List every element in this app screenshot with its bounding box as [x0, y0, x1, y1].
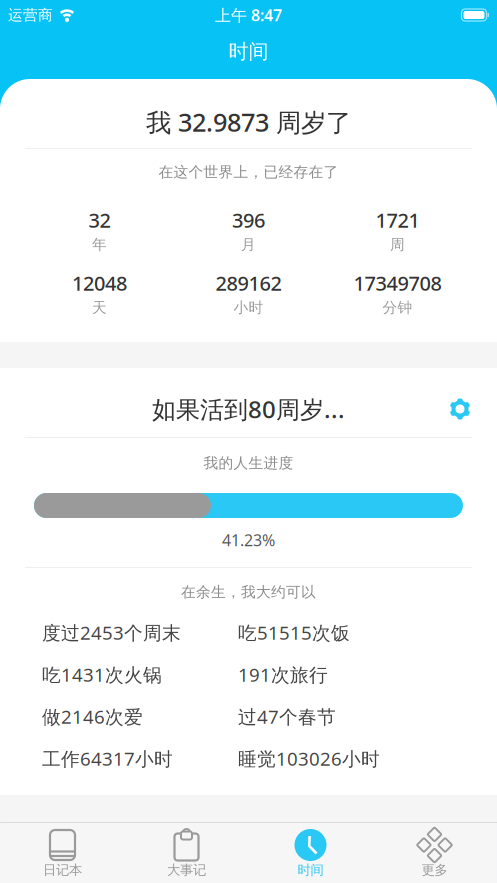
- button[interactable]: 设置: [449, 398, 471, 420]
- staticText: 吃1431次火锅: [42, 662, 162, 687]
- button[interactable]: 日记本: [0, 823, 124, 883]
- staticText: 运营商: [8, 6, 53, 24]
- staticText: 如果活到80周岁...: [152, 393, 345, 425]
- button[interactable]: 更多: [372, 823, 496, 883]
- staticText: 我 32.9873 周岁了: [146, 105, 351, 139]
- staticText: 41.23%: [222, 529, 275, 551]
- staticText: 大事记: [167, 862, 206, 878]
- staticText: 在余生，我大约可以: [181, 583, 316, 601]
- staticText: 做2146次爱: [42, 704, 143, 729]
- staticText: 日记本: [43, 862, 82, 878]
- staticText: 天: [92, 298, 107, 316]
- staticText: 时间: [228, 39, 268, 64]
- staticText: 更多: [421, 862, 447, 878]
- staticText: 分钟: [382, 298, 412, 316]
- staticText: 小时: [233, 298, 263, 316]
- staticText: 1721: [375, 207, 419, 233]
- staticText: 12048: [72, 270, 127, 296]
- staticText: 年: [92, 235, 107, 253]
- staticText: 396: [232, 207, 265, 233]
- staticText: 32: [88, 207, 110, 233]
- staticText: 在这个世界上，已经存在了: [158, 163, 338, 181]
- staticText: 我的人生进度: [203, 454, 293, 472]
- staticText: 吃51515次饭: [238, 620, 350, 645]
- staticText: 睡觉103026小时: [238, 746, 380, 771]
- staticText: 17349708: [353, 270, 441, 296]
- staticText: 过47个春节: [238, 704, 336, 729]
- button[interactable]: 大事记: [124, 823, 248, 883]
- staticText: 月: [241, 235, 256, 253]
- staticText: 上午 8:47: [215, 4, 282, 26]
- staticText: 度过2453个周末: [42, 620, 181, 645]
- staticText: 时间: [297, 862, 323, 878]
- button[interactable]: 时间: [248, 823, 372, 883]
- staticText: 工作64317小时: [42, 746, 173, 771]
- staticText: 191次旅行: [238, 662, 328, 687]
- staticText: 289162: [215, 270, 281, 296]
- staticText: 周: [390, 235, 405, 253]
